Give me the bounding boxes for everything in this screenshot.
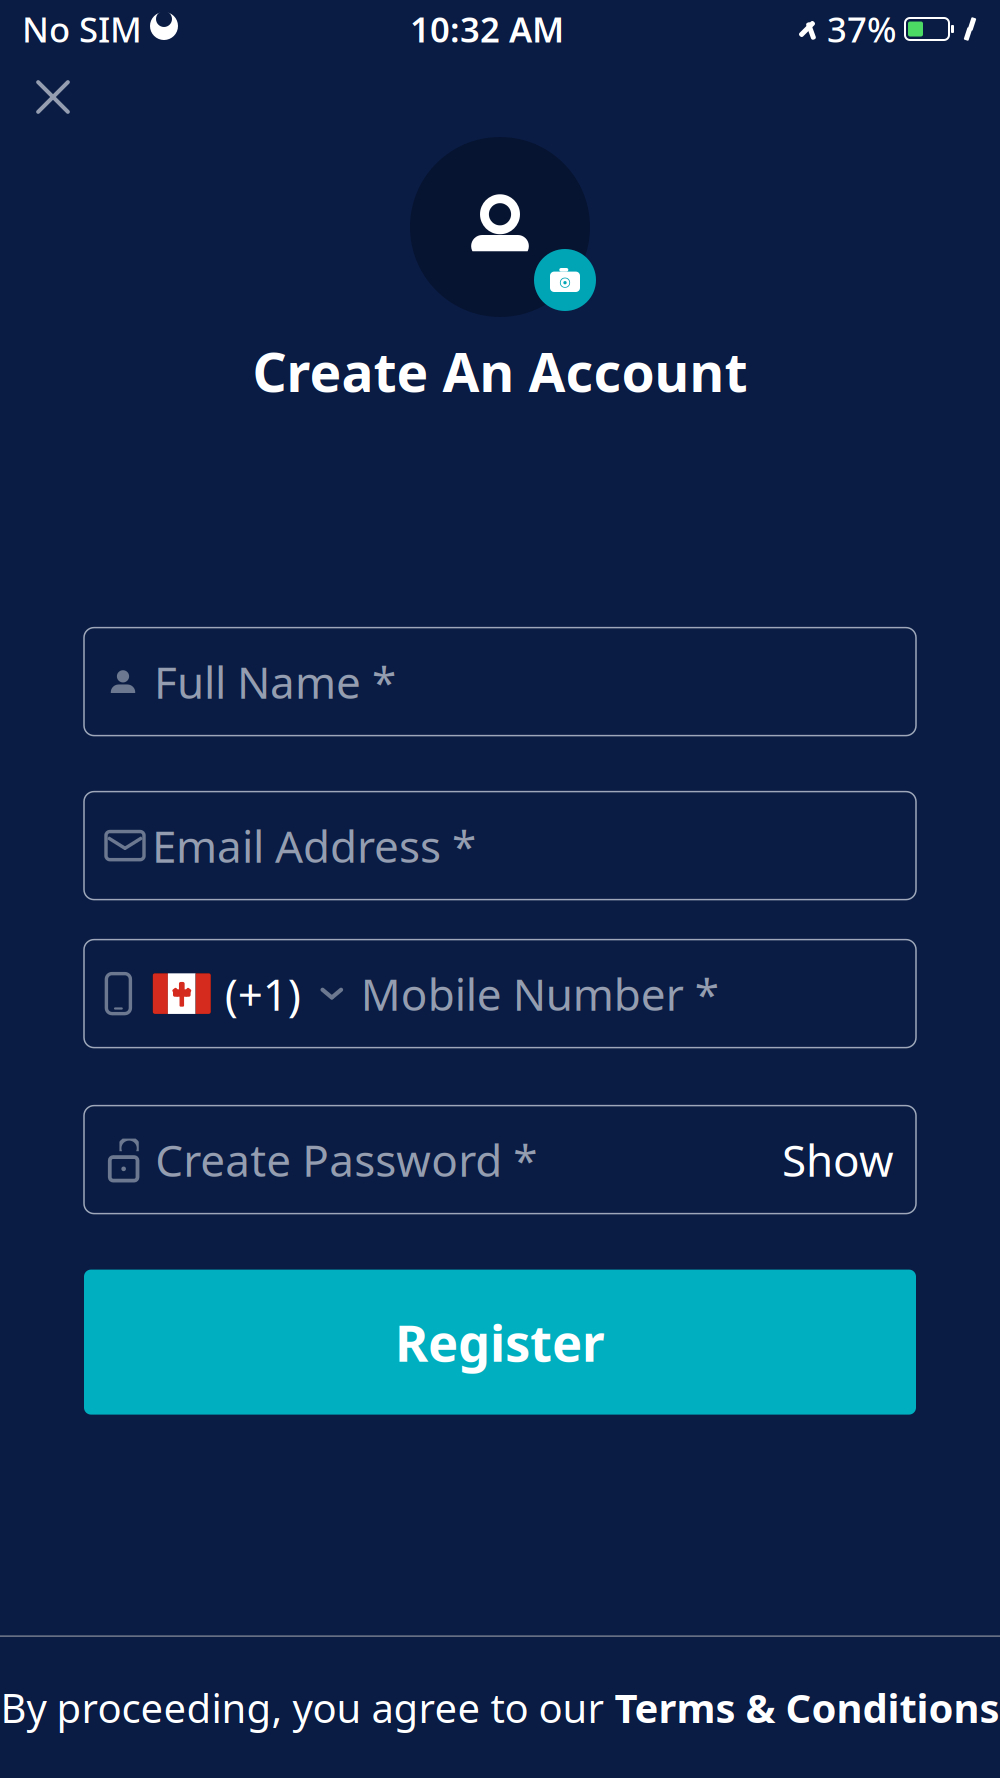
staticText: Show <box>782 1130 894 1189</box>
staticText: Mobile Number * <box>361 964 719 1023</box>
button[interactable]: By proceeding, you agree to our <box>0 1637 1000 1778</box>
button[interactable]: Change profile photo <box>407 134 593 320</box>
staticText: Terms & Conditions <box>614 1681 999 1734</box>
button[interactable]: Show <box>768 1120 894 1199</box>
staticText: Create An Account <box>252 336 747 407</box>
staticText: 37% <box>827 6 897 52</box>
button[interactable]: (+1) <box>84 940 916 1048</box>
staticText: By proceeding, you agree to our <box>0 1681 614 1734</box>
staticText: No SIM <box>22 6 142 52</box>
button[interactable]: Close <box>18 62 88 132</box>
staticText: (+1) <box>225 964 301 1023</box>
staticText: Register <box>395 1308 605 1376</box>
button[interactable]: Register <box>84 1270 916 1415</box>
staticText: Full Name * <box>154 652 396 711</box>
staticText: Create Password * <box>155 1130 537 1189</box>
staticText: 10:32 AM <box>410 6 564 52</box>
staticText: Email Address * <box>152 816 476 875</box>
